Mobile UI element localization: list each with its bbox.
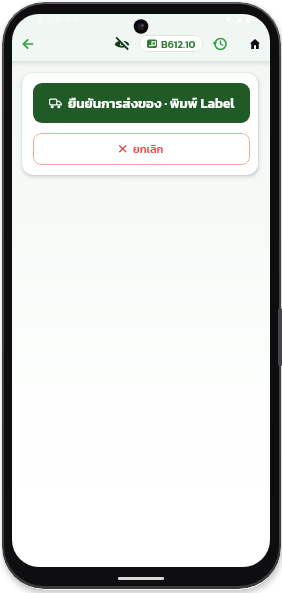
button[interactable]: B612.10 [139,35,203,52]
staticText: ยกเลิก [133,141,164,157]
button[interactable]: ยกเลิก [33,133,250,165]
button[interactable] [208,32,232,56]
staticText: B612.10 [161,36,196,52]
button[interactable] [243,32,267,56]
staticText: ยืนยันการส่งของ · พิมพ์ Label [68,93,235,113]
button[interactable] [110,32,134,56]
button[interactable] [16,32,40,56]
button[interactable]: ยืนยันการส่งของ · พิมพ์ Label [33,83,250,123]
